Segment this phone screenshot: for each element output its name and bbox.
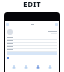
button[interactable] <box>7 40 57 43</box>
button[interactable]: Tab 3 <box>47 64 53 70</box>
button[interactable]: Back <box>6 23 9 26</box>
button[interactable] <box>7 43 57 46</box>
button[interactable] <box>7 37 57 40</box>
button[interactable]: Tab 2 <box>35 64 41 70</box>
button[interactable]: Tab 0 <box>11 64 17 70</box>
button[interactable] <box>7 49 57 52</box>
staticText: PROFILE SETTINGS UI <box>20 11 45 14</box>
button[interactable] <box>7 46 57 49</box>
button[interactable]: Tab 1 <box>23 64 29 70</box>
staticText: EDIT <box>23 0 41 9</box>
button[interactable]: Done <box>55 23 58 26</box>
